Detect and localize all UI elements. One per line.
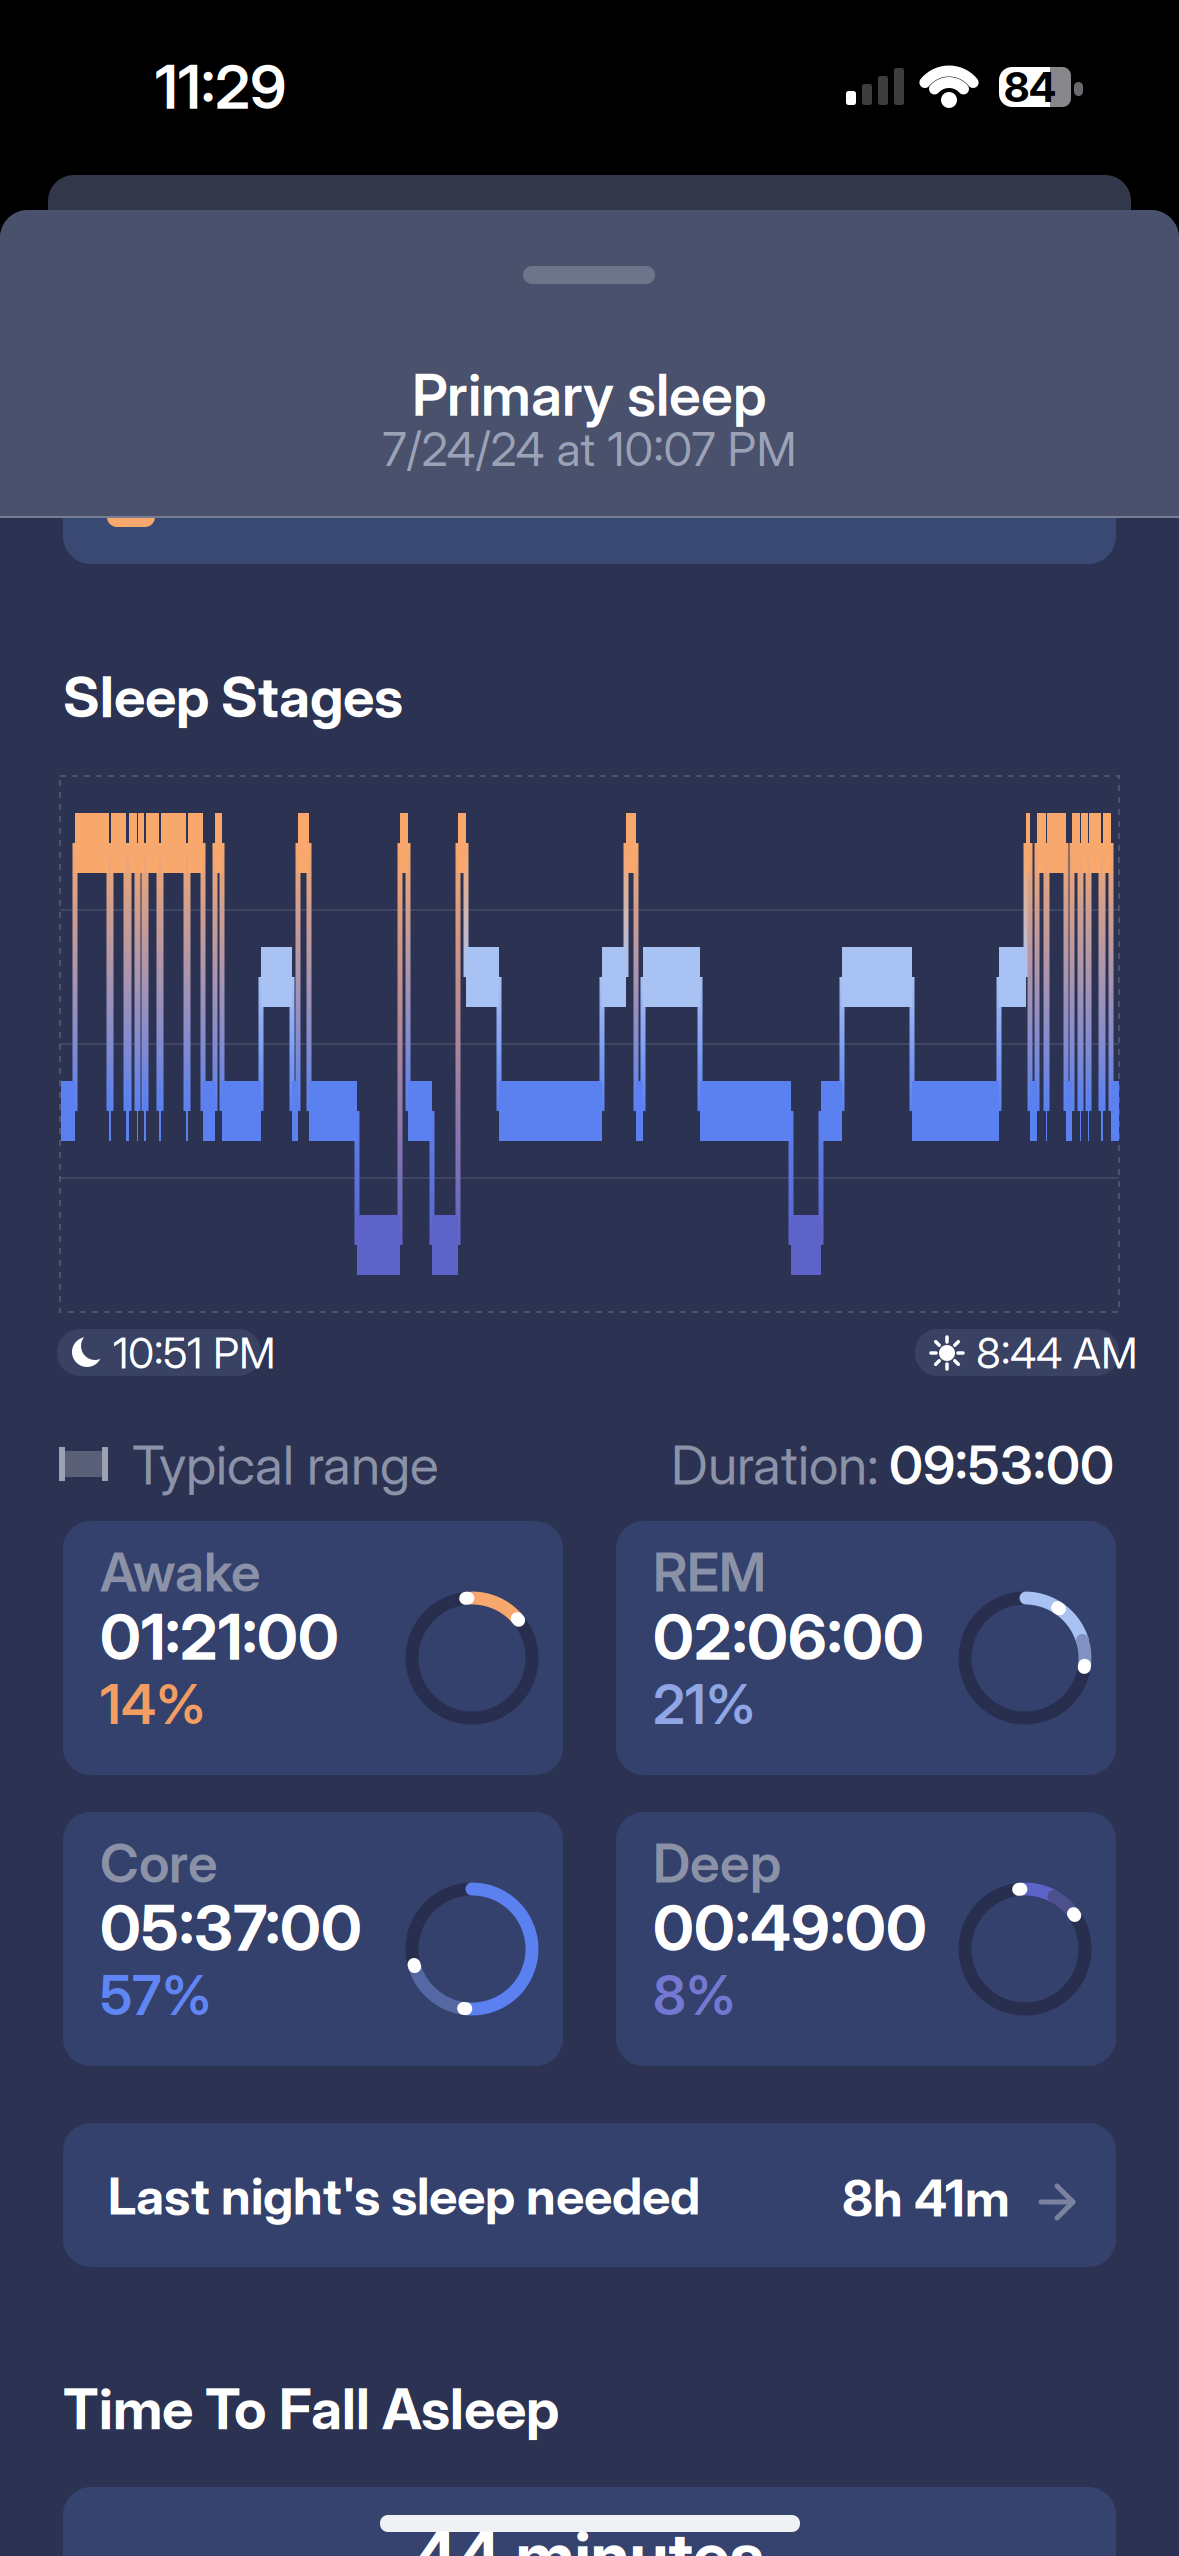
staticText: 11:29 (155, 52, 286, 122)
staticText: Time To Fall Asleep (63, 2376, 559, 2442)
button[interactable]: Last night's sleep needed (0, 0, 1179, 2556)
staticText: Sleep Stages (63, 664, 403, 730)
staticText: 14% (100, 1672, 206, 1736)
staticText: 00:49:00 (653, 1891, 927, 1965)
staticText: Typical range (132, 1433, 439, 1496)
staticText: 09:53:00 (889, 1433, 1114, 1496)
staticText: Awake (100, 1540, 261, 1603)
staticText: 01:21:00 (100, 1600, 339, 1674)
staticText: Core (100, 1831, 218, 1894)
staticText: 05:37:00 (100, 1891, 362, 1965)
staticText: 7/24/24 at 10:07 PM (382, 421, 796, 477)
staticText: 8:44 AM (976, 1328, 1138, 1378)
staticText: 44 minutes (413, 2517, 764, 2556)
staticText: 8h 41m (842, 2168, 1010, 2228)
staticText: 02:06:00 (653, 1600, 924, 1674)
staticText: Deep (653, 1831, 781, 1894)
staticText: 8% (653, 1963, 736, 2027)
staticText: 57% (100, 1963, 212, 2027)
staticText: Primary sleep (412, 361, 767, 429)
staticText: Duration: (671, 1433, 879, 1496)
staticText: 84 (1004, 63, 1056, 111)
staticText: Last night's sleep needed (108, 2166, 700, 2226)
staticText: 21% (653, 1672, 756, 1736)
staticText: 10:51 PM (113, 1328, 276, 1378)
staticText: REM (653, 1540, 766, 1603)
